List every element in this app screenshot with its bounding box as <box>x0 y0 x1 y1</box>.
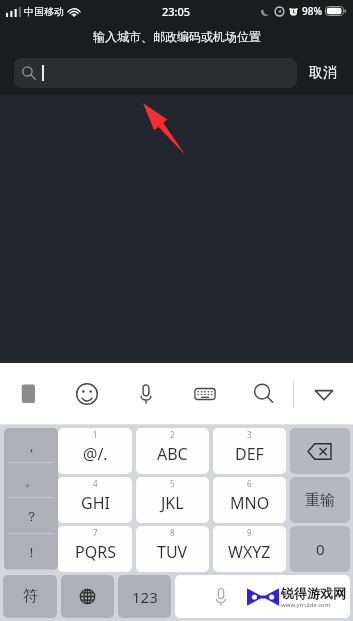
staticText: 。 <box>25 473 38 489</box>
button[interactable]: Keyboard settings <box>175 363 234 425</box>
staticText: 3 <box>247 429 252 440</box>
staticText: 锐得游戏网 <box>281 585 346 601</box>
button[interactable]: 8 <box>136 526 209 572</box>
button[interactable]: Clipboard <box>0 363 58 425</box>
staticText: JKL <box>161 492 184 514</box>
staticText: 98% <box>302 4 322 18</box>
button[interactable]: 4 <box>58 477 132 523</box>
button[interactable]: 重输 <box>290 477 350 523</box>
staticText: 4 <box>93 478 98 489</box>
staticText: 输入城市、邮政编码或机场位置 <box>93 29 261 44</box>
button[interactable]: 取消 <box>307 60 339 86</box>
staticText: 7 <box>93 527 98 538</box>
button[interactable] <box>14 58 297 88</box>
button[interactable]: Hide keyboard <box>294 363 353 425</box>
staticText: MNO <box>230 492 270 514</box>
staticText: PQRS <box>75 541 116 563</box>
staticText: www.ytruide.com <box>281 601 331 609</box>
button[interactable]: Voice input space <box>175 575 350 618</box>
button[interactable]: 3 <box>213 428 286 474</box>
button[interactable]: 123 <box>118 575 171 618</box>
staticText: DEF <box>235 443 264 465</box>
staticText: @/. <box>83 443 108 465</box>
button[interactable]: 7 <box>58 526 132 572</box>
staticText: WXYZ <box>228 541 271 563</box>
button[interactable]: 符 <box>3 575 57 618</box>
staticText: ？ <box>25 508 38 524</box>
button[interactable]: Voice input <box>116 363 175 425</box>
staticText: 123 <box>132 587 158 607</box>
button[interactable]: ， <box>4 428 58 463</box>
staticText: 8 <box>170 527 175 538</box>
staticText: 1 <box>93 429 98 440</box>
staticText: 中国移动 <box>24 5 64 18</box>
staticText: ABC <box>157 443 188 465</box>
button[interactable]: 1 <box>58 428 132 474</box>
button[interactable]: 2 <box>136 428 209 474</box>
staticText: 取消 <box>309 64 337 82</box>
staticText: TUV <box>157 541 188 563</box>
button[interactable]: 6 <box>213 477 286 523</box>
staticText: GHI <box>81 492 110 514</box>
button[interactable]: 0 <box>290 526 350 572</box>
button[interactable]: 9 <box>213 526 286 572</box>
button[interactable]: ！ <box>4 534 58 570</box>
button[interactable]: ？ <box>4 498 58 534</box>
button[interactable]: 5 <box>136 477 209 523</box>
staticText: 9 <box>247 527 252 538</box>
staticText: ！ <box>25 544 38 560</box>
button[interactable]: Delete <box>290 428 350 474</box>
staticText: 23:05 <box>162 4 191 19</box>
button[interactable]: Emoji <box>58 363 116 425</box>
button[interactable]: Search <box>234 363 293 425</box>
staticText: ， <box>25 438 38 454</box>
button[interactable]: Change language <box>61 575 114 618</box>
staticText: 0 <box>316 539 325 559</box>
staticText: 5 <box>170 478 175 489</box>
staticText: 2 <box>170 429 175 440</box>
button[interactable]: 。 <box>4 463 58 498</box>
staticText: 重输 <box>305 491 335 510</box>
staticText: 6 <box>247 478 252 489</box>
staticText: 符 <box>23 587 38 606</box>
